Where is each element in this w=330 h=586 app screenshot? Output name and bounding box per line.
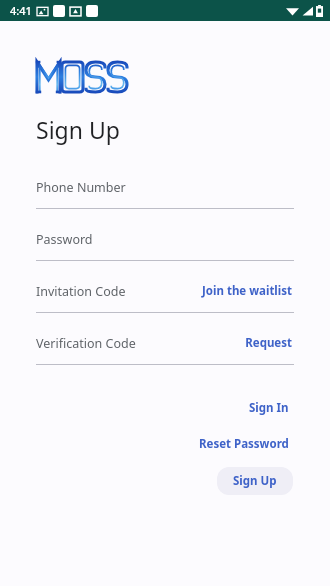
button[interactable]: Password	[0, 226, 330, 278]
staticText: Join the waitlist	[201, 283, 292, 299]
button[interactable]: Request	[243, 332, 294, 354]
button[interactable]: Reset Password	[195, 432, 293, 456]
staticText: Verification Code	[36, 335, 136, 352]
staticText: Reset Password	[199, 436, 289, 452]
button[interactable]: Invitation Code	[0, 278, 330, 330]
button[interactable]: Join the waitlist	[199, 280, 294, 302]
staticText: Invitation Code	[36, 283, 126, 300]
staticText: Request	[245, 335, 292, 351]
staticText: Phone Number	[36, 179, 126, 196]
button[interactable]: Verification Code	[0, 330, 330, 382]
staticText: Sign Up	[36, 114, 120, 145]
staticText: Password	[36, 231, 93, 248]
button[interactable]: Sign In	[245, 396, 293, 420]
button[interactable]: Phone Number	[0, 174, 330, 226]
staticText: 4:41	[10, 3, 32, 18]
staticText: Sign Up	[233, 473, 277, 489]
staticText: Sign In	[249, 400, 289, 416]
button[interactable]: Sign Up	[217, 467, 293, 495]
